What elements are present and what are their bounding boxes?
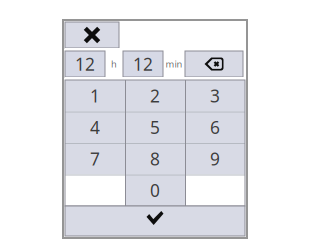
staticText: h — [111, 58, 117, 70]
staticText: 5 — [150, 116, 160, 139]
staticText: 12 — [133, 52, 153, 75]
staticText: 0 — [150, 179, 160, 202]
staticText: 12 — [75, 52, 95, 75]
staticText: 2 — [150, 84, 160, 107]
staticText: 3 — [210, 84, 220, 107]
button[interactable]: 8 — [125, 143, 185, 174]
button[interactable]: 3 — [185, 80, 245, 111]
button[interactable]: Close — [65, 22, 119, 48]
staticText: 6 — [210, 116, 220, 139]
button[interactable] — [185, 174, 245, 206]
button[interactable]: 12 — [123, 51, 163, 77]
button[interactable]: Confirm — [65, 206, 245, 236]
button[interactable]: Backspace — [185, 51, 243, 77]
button[interactable]: 7 — [65, 143, 125, 174]
button[interactable]: 5 — [125, 111, 185, 143]
staticText: 9 — [210, 147, 220, 170]
button[interactable]: 6 — [185, 111, 245, 143]
staticText: 1 — [90, 84, 100, 107]
staticText: 7 — [90, 147, 100, 170]
button[interactable] — [65, 174, 125, 206]
button[interactable]: 1 — [65, 80, 125, 111]
button[interactable]: 2 — [125, 80, 185, 111]
staticText: 8 — [150, 147, 160, 170]
button[interactable]: 12 — [65, 51, 105, 77]
button[interactable]: 4 — [65, 111, 125, 143]
button[interactable]: 0 — [125, 174, 185, 206]
staticText: 4 — [90, 116, 100, 139]
button[interactable]: 9 — [185, 143, 245, 174]
staticText: min — [165, 58, 182, 70]
